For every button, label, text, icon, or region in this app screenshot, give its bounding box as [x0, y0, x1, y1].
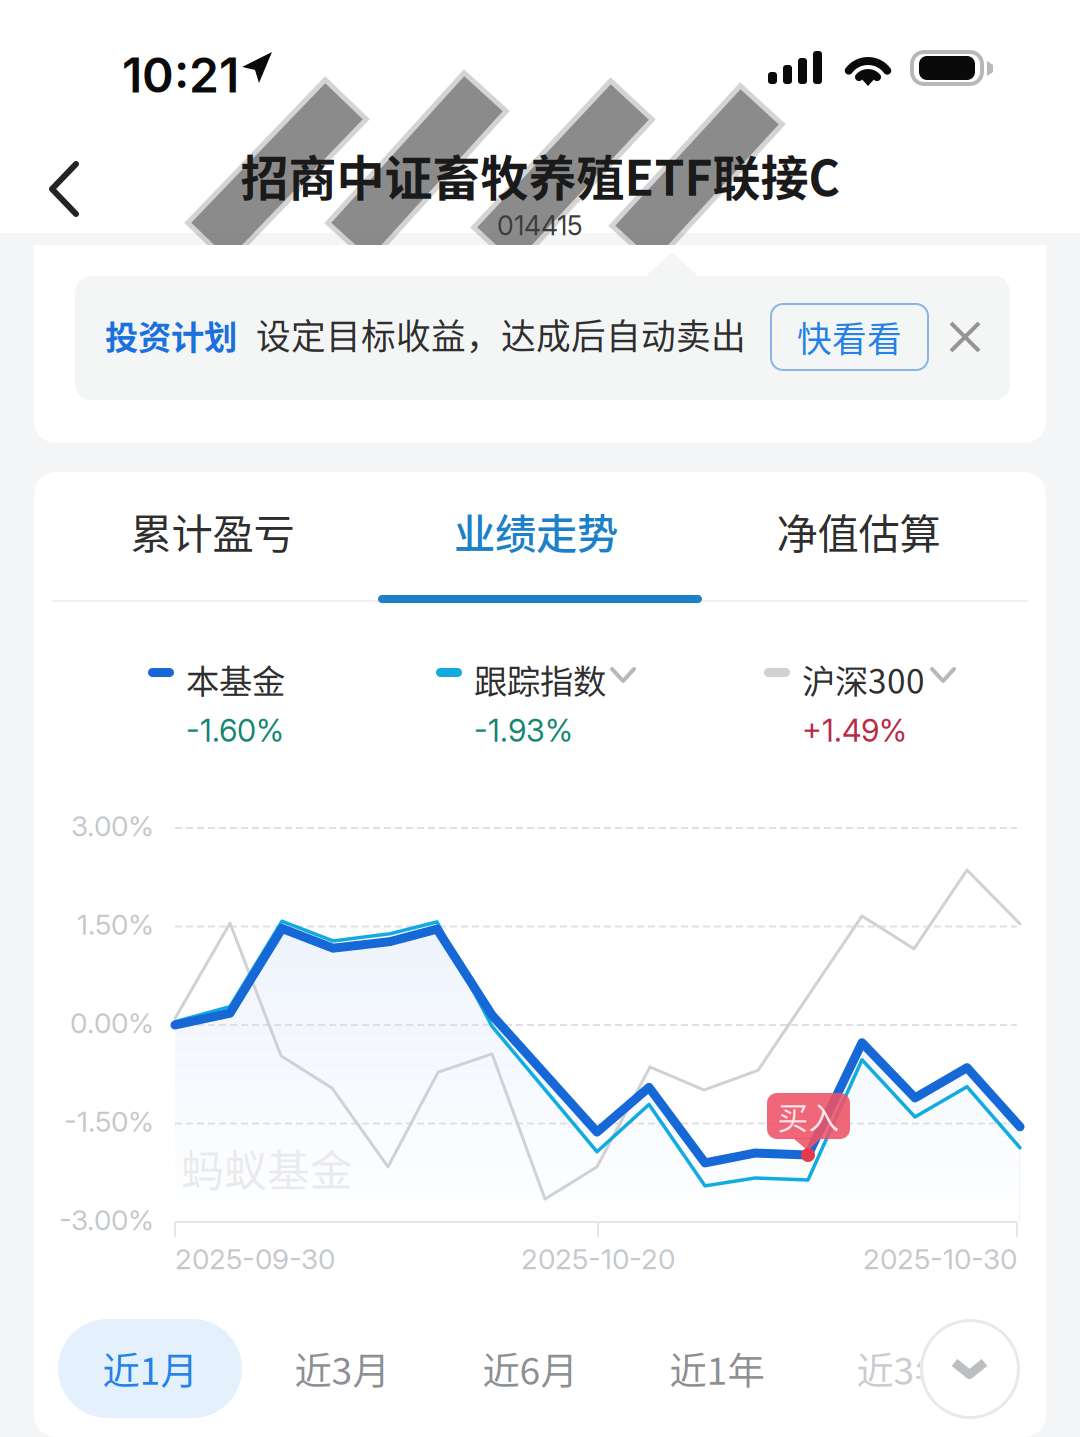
button[interactable]: 沪深300: [764, 655, 1034, 759]
button[interactable]: 本基金: [148, 655, 418, 759]
staticText: -1.60%: [186, 712, 284, 749]
button[interactable]: 跟踪指数: [436, 655, 706, 759]
button[interactable]: 累计盈亏: [44, 467, 381, 595]
staticText: 014415: [497, 209, 583, 242]
staticText: -1.93%: [474, 712, 573, 749]
staticText: 蚂蚁基金: [181, 1137, 353, 1199]
staticText: 近3月: [294, 1341, 389, 1396]
staticText: 净值估算: [776, 501, 940, 561]
button[interactable]: Close: [947, 319, 983, 355]
staticText: -3.00%: [59, 1203, 154, 1237]
button[interactable]: 净值估算: [690, 467, 1027, 595]
staticText: 近6月: [482, 1341, 577, 1396]
staticText: 3.00%: [71, 809, 154, 843]
button[interactable]: Show more ranges: [920, 1319, 1020, 1419]
staticText: 沪深300: [802, 655, 925, 703]
staticText: 2025-09-30: [175, 1242, 335, 1276]
button[interactable]: 快看看: [770, 303, 929, 371]
staticText: 投资计划: [105, 311, 237, 359]
staticText: 0.00%: [70, 1006, 154, 1040]
staticText: 1.50%: [77, 907, 154, 941]
staticText: 跟踪指数: [474, 655, 606, 703]
staticText: -1.50%: [64, 1104, 154, 1138]
staticText: 招商中证畜牧养殖ETF联接C: [240, 140, 839, 209]
button[interactable]: 近1年: [625, 1319, 809, 1418]
button[interactable]: 近3年: [812, 1319, 996, 1418]
button[interactable]: 近1月: [58, 1319, 242, 1418]
staticText: 快看看: [797, 312, 902, 362]
button[interactable]: 近3月: [250, 1319, 434, 1418]
staticText: 累计盈亏: [130, 501, 294, 561]
staticText: +1.49%: [802, 712, 907, 749]
staticText: 本基金: [186, 655, 285, 703]
staticText: 2025-10-20: [521, 1242, 675, 1276]
staticText: 近1年: [669, 1341, 764, 1396]
staticText: 近1月: [102, 1341, 197, 1396]
staticText: 设定目标收益，达成后自动卖出: [256, 309, 746, 359]
staticText: 买入: [777, 1094, 839, 1138]
staticText: 10:21: [122, 46, 239, 104]
button[interactable]: 近6月: [438, 1319, 622, 1418]
button[interactable]: Back: [18, 144, 114, 236]
staticText: 2025-10-30: [863, 1242, 1017, 1276]
staticText: 业绩走势: [454, 501, 618, 561]
staticText: 近3年: [856, 1341, 951, 1396]
button[interactable]: 业绩走势: [367, 467, 705, 595]
